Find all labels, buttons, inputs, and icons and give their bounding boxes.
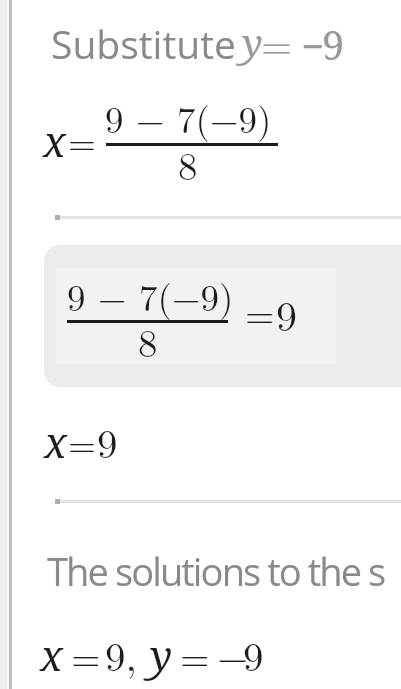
staticText: 9 xyxy=(322,17,345,71)
staticText: = xyxy=(71,628,101,682)
button[interactable]: The solutions to the s xyxy=(47,545,385,597)
staticText: = xyxy=(245,285,275,339)
staticText: = xyxy=(68,416,97,467)
staticText: 9 xyxy=(276,284,298,344)
staticText: y xyxy=(242,15,263,68)
staticText: 8 xyxy=(178,136,198,191)
staticText: 9 xyxy=(243,625,264,683)
staticText: x xyxy=(43,112,66,169)
button[interactable]: Substitute xyxy=(51,17,236,70)
staticText: = xyxy=(180,628,210,682)
staticText: = xyxy=(68,114,97,165)
staticText: x xyxy=(44,413,67,470)
button[interactable] xyxy=(44,245,401,387)
staticText: 9 xyxy=(97,412,118,470)
staticText: − xyxy=(217,626,249,683)
staticText: = xyxy=(261,14,293,71)
staticText: y xyxy=(150,626,173,683)
staticText: 9, xyxy=(105,625,137,683)
staticText: − xyxy=(301,18,325,72)
staticText: 8 xyxy=(138,313,158,368)
staticText: 9 − 7(−9) xyxy=(105,91,272,143)
staticText: 9 − 7(−9) xyxy=(67,269,228,321)
staticText: x xyxy=(40,626,63,683)
